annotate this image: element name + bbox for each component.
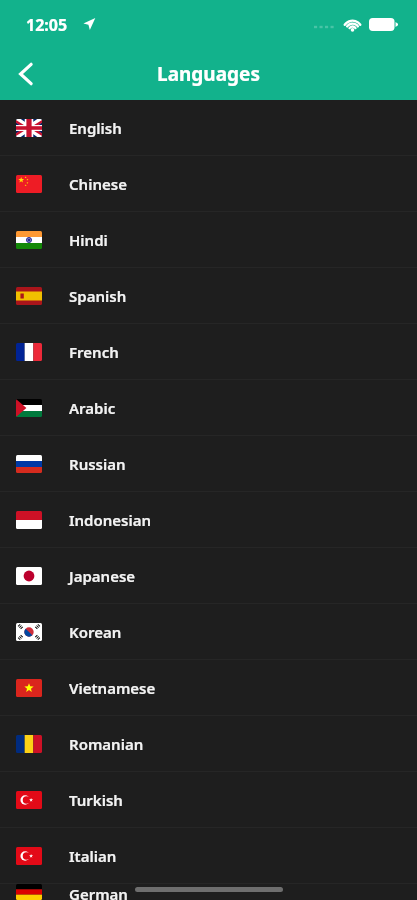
button[interactable]: Romanian	[0, 716, 417, 771]
staticText: Russian	[69, 454, 126, 474]
button[interactable]: French	[0, 324, 417, 379]
staticText: Japanese	[69, 566, 136, 586]
staticText: Languages	[157, 61, 260, 87]
button[interactable]: Arabic	[0, 380, 417, 435]
staticText: Hindi	[69, 230, 108, 250]
button[interactable]: Japanese	[0, 548, 417, 603]
staticText: Indonesian	[69, 510, 152, 530]
staticText: Korean	[69, 622, 122, 642]
button[interactable]: English	[0, 100, 417, 155]
button[interactable]: Russian	[0, 436, 417, 491]
staticText: Chinese	[69, 174, 127, 194]
staticText: Romanian	[69, 734, 144, 754]
staticText: Vietnamese	[69, 678, 156, 698]
staticText: Arabic	[69, 398, 116, 418]
staticText: French	[69, 342, 119, 362]
button[interactable]: Italian	[0, 828, 417, 883]
staticText: English	[69, 118, 122, 138]
button[interactable]: Chinese	[0, 156, 417, 211]
button[interactable]: Vietnamese	[0, 660, 417, 715]
button[interactable]: Back	[0, 48, 52, 100]
staticText: Turkish	[69, 790, 123, 810]
button[interactable]: Spanish	[0, 268, 417, 323]
button[interactable]: Hindi	[0, 212, 417, 267]
staticText: 12:05	[26, 14, 68, 36]
button[interactable]: Turkish	[0, 772, 417, 827]
button[interactable]: Indonesian	[0, 492, 417, 547]
button[interactable]: German	[0, 884, 417, 900]
staticText: Italian	[69, 846, 117, 866]
button[interactable]: Korean	[0, 604, 417, 659]
staticText: German	[69, 884, 128, 900]
staticText: Spanish	[69, 286, 127, 306]
